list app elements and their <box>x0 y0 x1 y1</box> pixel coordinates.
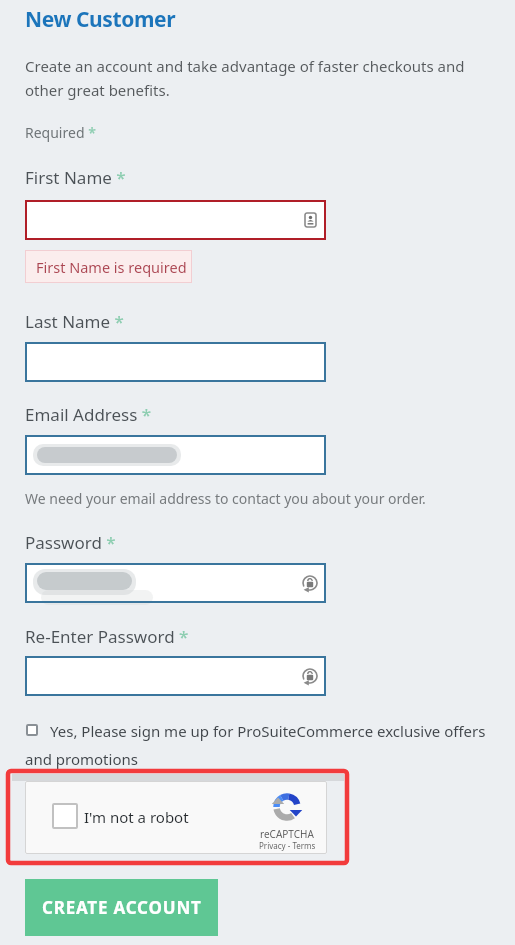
staticText: New Customer <box>25 5 176 34</box>
button[interactable]: I'm not a robot <box>25 781 327 854</box>
staticText: Yes, Please sign me up for ProSuiteComme… <box>50 721 486 741</box>
staticText: I'm not a robot <box>84 807 189 827</box>
button[interactable] <box>26 724 38 736</box>
staticText: and promotions <box>25 749 138 769</box>
staticText: reCAPTCHA <box>260 827 314 841</box>
staticText: Password * <box>25 531 116 554</box>
staticText: Create an account and take advantage of … <box>25 56 465 100</box>
button[interactable] <box>25 435 326 475</box>
staticText: Last Name * <box>25 310 124 333</box>
staticText: Privacy - Terms <box>259 840 316 851</box>
button[interactable] <box>25 656 326 696</box>
button[interactable]: CREATE ACCOUNT <box>25 879 218 936</box>
staticText: We need your email address to contact yo… <box>25 489 426 508</box>
button[interactable] <box>25 342 326 382</box>
button[interactable] <box>25 200 326 240</box>
staticText: First Name * <box>25 166 126 189</box>
staticText: Required * <box>25 123 96 142</box>
button[interactable] <box>25 563 326 603</box>
staticText: Email Address * <box>25 403 152 426</box>
staticText: First Name is required <box>36 257 187 277</box>
staticText: Re-Enter Password * <box>25 625 189 648</box>
staticText: CREATE ACCOUNT <box>42 896 202 919</box>
